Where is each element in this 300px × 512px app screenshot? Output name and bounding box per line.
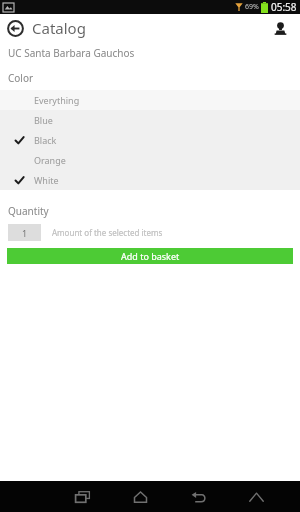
button[interactable]: White	[0, 170, 300, 190]
other: Back	[7, 20, 24, 37]
button[interactable]: Orange	[0, 150, 300, 170]
staticText: Add to basket	[121, 250, 180, 262]
button[interactable]: Blue	[0, 110, 300, 130]
staticText: Everything	[34, 94, 80, 106]
staticText: White	[34, 174, 59, 186]
staticText: 69%	[245, 2, 259, 12]
staticText: Blue	[34, 114, 53, 126]
button[interactable]: Account	[268, 16, 292, 40]
staticText: Quantity	[8, 204, 49, 218]
staticText: Black	[34, 134, 57, 146]
staticText: Amount of the selected items	[52, 227, 163, 238]
staticText: 1	[22, 227, 28, 239]
button[interactable]: Recent apps	[67, 482, 97, 512]
button[interactable]: Back	[7, 18, 86, 38]
staticText: 05:58	[271, 0, 297, 14]
staticText: UC Santa Barbara Gauchos	[8, 46, 135, 60]
button[interactable]: Black	[0, 130, 300, 150]
button[interactable]: 1	[8, 224, 41, 241]
button[interactable]: Add to basket	[7, 248, 293, 264]
staticText: Catalog	[32, 18, 86, 38]
button[interactable]: Home	[125, 482, 155, 512]
button[interactable]: Back	[183, 482, 213, 512]
button[interactable]: Everything	[0, 90, 300, 110]
staticText: Color	[8, 71, 34, 85]
staticText: Orange	[34, 154, 66, 166]
button[interactable]: Show menu	[241, 482, 271, 512]
